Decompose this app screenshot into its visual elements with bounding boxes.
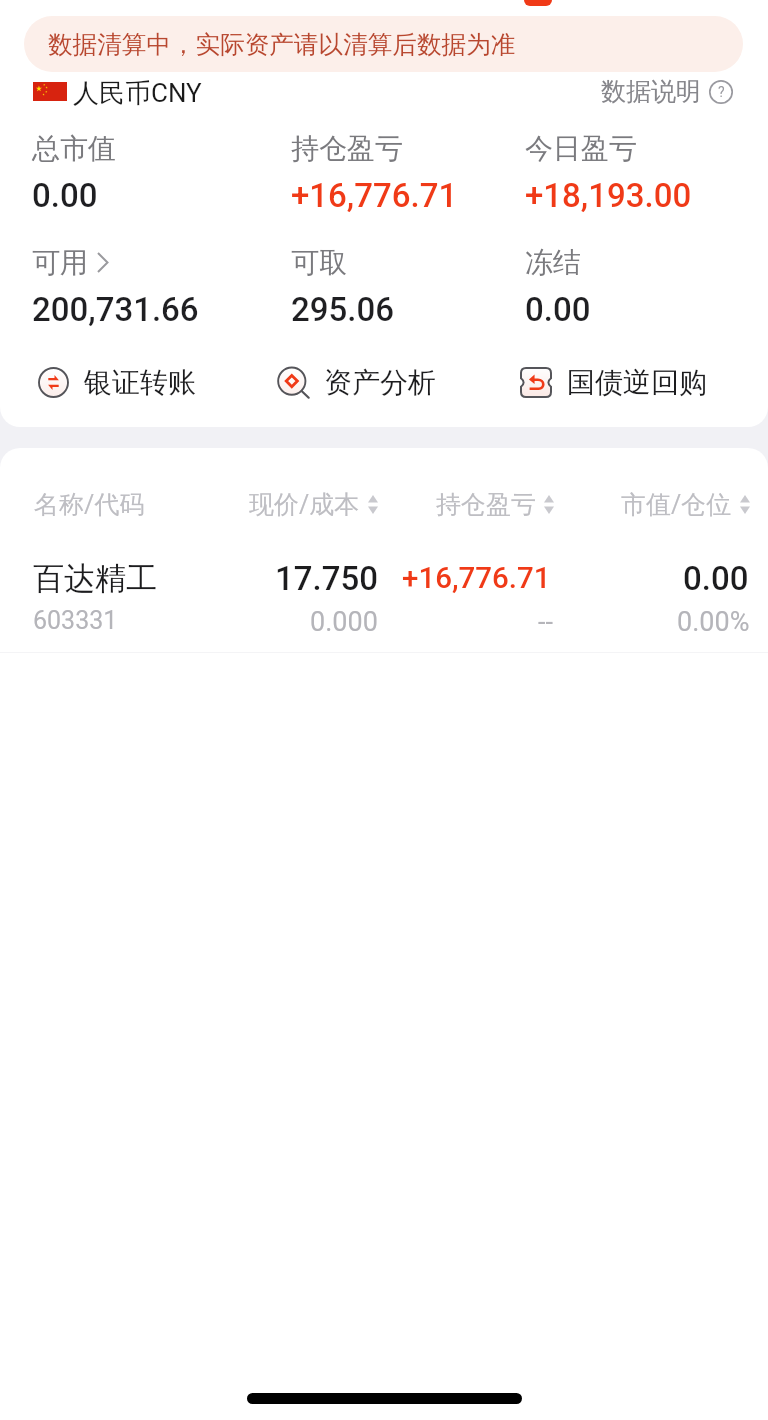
staticText: --	[538, 606, 553, 638]
staticText: 持仓盈亏	[291, 131, 403, 166]
button[interactable]: 百达精工	[0, 544, 768, 652]
button[interactable]: 现价/成本	[249, 489, 378, 520]
staticText: 200,731.66	[32, 290, 199, 329]
button[interactable]: 市值/仓位	[621, 489, 750, 520]
staticText: 冻结	[525, 245, 581, 280]
staticText: 资产分析	[324, 365, 436, 400]
staticText: 人民币CNY	[73, 77, 202, 110]
staticText: 295.06	[291, 290, 394, 329]
staticText: +16,776.71	[291, 176, 458, 215]
other: Bank transfer	[38, 367, 69, 398]
staticText: 今日盈亏	[525, 131, 637, 166]
staticText: +16,776.71	[402, 561, 551, 596]
other: Treasury reverse repo	[520, 367, 552, 398]
staticText: 国债逆回购	[567, 365, 707, 400]
button[interactable]: Bank transfer	[38, 360, 196, 404]
staticText: 0.00%	[677, 606, 750, 638]
staticText: 0.000	[310, 606, 378, 638]
staticText: 0.00	[525, 290, 591, 329]
button[interactable]: 持仓盈亏	[436, 489, 554, 520]
staticText: 可取	[291, 245, 347, 280]
button[interactable]: 数据说明	[601, 76, 733, 107]
staticText: 总市值	[32, 131, 116, 166]
staticText: 持仓盈亏	[436, 489, 536, 520]
staticText: 可用	[32, 245, 88, 280]
staticText: 百达精工	[33, 559, 157, 598]
staticText: 数据说明	[601, 76, 701, 107]
staticText: 0.00	[32, 176, 98, 215]
staticText: 市值/仓位	[621, 489, 732, 520]
button[interactable]: Treasury reverse repo	[520, 360, 707, 404]
staticText: 现价/成本	[249, 489, 360, 520]
staticText: 17.750	[275, 559, 378, 598]
staticText: 名称/代码	[34, 489, 145, 520]
staticText: +18,193.00	[525, 176, 692, 215]
staticText: ?	[718, 84, 725, 100]
other: Asset analysis	[278, 367, 309, 398]
staticText: 603331	[33, 606, 118, 635]
staticText: 银证转账	[84, 365, 196, 400]
staticText: 数据清算中，实际资产请以清算后数据为准	[48, 29, 516, 60]
button[interactable]: Asset analysis	[278, 360, 436, 404]
staticText: 0.00	[683, 559, 749, 598]
button[interactable]: 数据清算中，实际资产请以清算后数据为准	[24, 16, 743, 72]
other: Data explanation	[709, 80, 733, 104]
